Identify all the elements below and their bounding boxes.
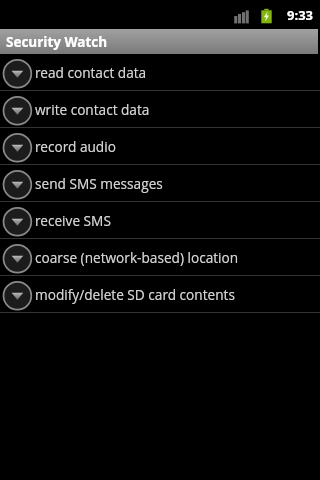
button[interactable]: Expand bbox=[0, 165, 320, 201]
other: Expand bbox=[0, 91, 35, 127]
staticText: record audio bbox=[35, 137, 116, 156]
button[interactable]: Expand bbox=[0, 128, 320, 164]
other: Expand bbox=[0, 239, 35, 275]
staticText: Security Watch bbox=[6, 33, 108, 51]
other: Expand bbox=[0, 165, 35, 201]
staticText: send SMS messages bbox=[35, 174, 163, 193]
button[interactable]: Expand bbox=[0, 91, 320, 127]
button[interactable]: Expand bbox=[0, 54, 320, 90]
staticText: write contact data bbox=[35, 100, 150, 119]
other: Expand bbox=[0, 128, 35, 164]
staticText: 9:33 bbox=[287, 6, 313, 24]
button[interactable]: Expand bbox=[0, 239, 320, 275]
other: Expand bbox=[0, 202, 35, 238]
staticText: modify/delete SD card contents bbox=[35, 285, 235, 304]
staticText: read contact data bbox=[35, 63, 147, 82]
staticText: receive SMS bbox=[35, 211, 111, 230]
other: Expand bbox=[0, 276, 35, 312]
staticText: coarse (network-based) location bbox=[35, 248, 239, 267]
button[interactable]: Expand bbox=[0, 276, 320, 312]
other: Expand bbox=[0, 54, 35, 90]
button[interactable]: Expand bbox=[0, 202, 320, 238]
